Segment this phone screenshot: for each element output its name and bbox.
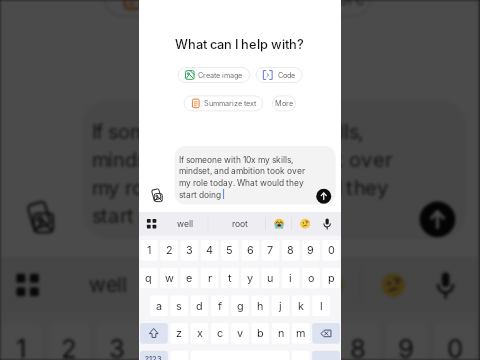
button[interactable]: Video thumbnail bbox=[0, 0, 480, 360]
